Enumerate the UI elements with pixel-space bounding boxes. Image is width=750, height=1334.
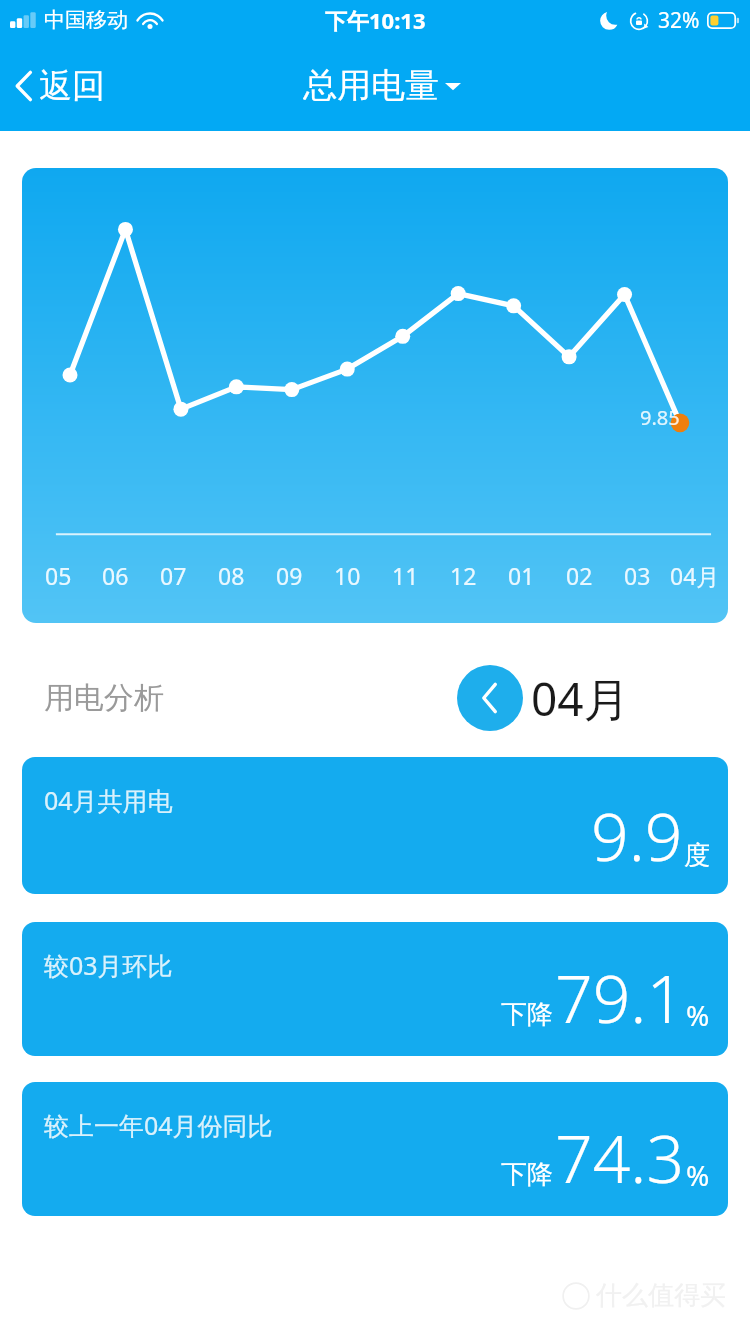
staticText: 04月 [670, 560, 720, 591]
staticText: 9.85 [640, 404, 680, 431]
staticText: 04月 [531, 667, 630, 730]
staticText: 下降 [501, 998, 553, 1031]
staticText: 什么值得买 [596, 1279, 726, 1312]
staticText: 下降 [501, 1158, 553, 1191]
staticText: 11 [392, 560, 419, 591]
other: 上一月 [457, 665, 523, 731]
staticText: 总用电量 [303, 64, 439, 107]
staticText: 07 [160, 560, 187, 591]
staticText: % [686, 1156, 710, 1194]
staticText: 74.3 [555, 1112, 685, 1202]
staticText: 32% [658, 6, 700, 35]
staticText: 05 [45, 560, 72, 591]
staticText: 79.1 [555, 952, 685, 1042]
staticText: % [686, 996, 710, 1034]
staticText: 09 [276, 560, 303, 591]
staticText: 10 [334, 560, 361, 591]
button[interactable]: 总用电量 [303, 64, 463, 107]
staticText: 08 [218, 560, 245, 591]
staticText: 较03月环比 [44, 948, 173, 982]
staticText: 用电分析 [44, 679, 164, 717]
staticText: 03 [624, 560, 651, 591]
staticText: 下午10:13 [325, 5, 426, 35]
button[interactable]: 9.85 [22, 168, 728, 623]
staticText: 较上一年04月份同比 [44, 1108, 273, 1142]
button[interactable]: 上一月 [457, 665, 630, 731]
staticText: 12 [450, 560, 477, 591]
button[interactable]: 较上一年04月份同比 [22, 1082, 728, 1216]
staticText: 返回 [39, 65, 105, 107]
staticText: 度 [684, 839, 710, 872]
button[interactable]: 返回 [0, 59, 121, 113]
button[interactable]: 04月共用电 [22, 757, 728, 894]
staticText: 中国移动 [44, 7, 128, 33]
staticText: 02 [566, 560, 593, 591]
staticText: 06 [102, 560, 129, 591]
staticText: 9.9 [591, 790, 683, 880]
staticText: 01 [508, 560, 535, 591]
staticText: 04月共用电 [44, 783, 173, 817]
button[interactable]: 较03月环比 [22, 922, 728, 1056]
